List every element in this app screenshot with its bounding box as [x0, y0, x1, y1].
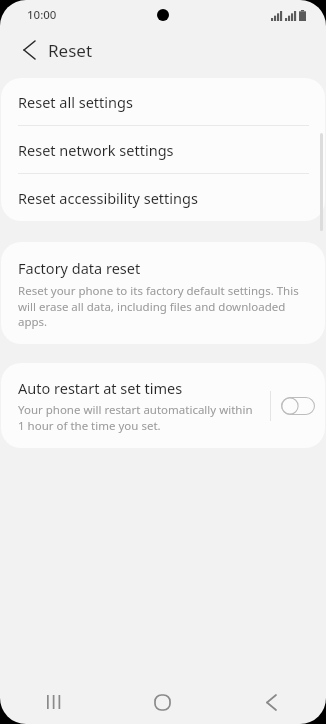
- button[interactable]: Reset all settings: [1, 78, 325, 125]
- button[interactable]: Reset accessibility settings: [1, 174, 325, 221]
- staticText: Reset accessibility settings: [18, 188, 198, 208]
- button[interactable]: Auto restart at set times toggle: [281, 397, 315, 415]
- button[interactable]: Factory data reset: [1, 242, 325, 344]
- staticText: Reset network settings: [18, 140, 174, 160]
- button[interactable]: Reset network settings: [1, 126, 325, 173]
- staticText: Factory data reset: [18, 258, 141, 278]
- staticText: Reset: [48, 39, 93, 62]
- button[interactable]: Back: [217, 680, 326, 724]
- button[interactable]: Auto restart at set times: [1, 363, 325, 448]
- button[interactable]: Recents: [0, 680, 108, 724]
- staticText: Reset your phone to its factory default …: [18, 283, 307, 329]
- staticText: Your phone will restart automatically wi…: [18, 402, 260, 433]
- button[interactable]: Back: [12, 33, 46, 67]
- button[interactable]: Home: [108, 680, 217, 724]
- staticText: Auto restart at set times: [18, 378, 183, 398]
- staticText: 10:00: [27, 7, 57, 23]
- staticText: Reset all settings: [18, 92, 133, 112]
